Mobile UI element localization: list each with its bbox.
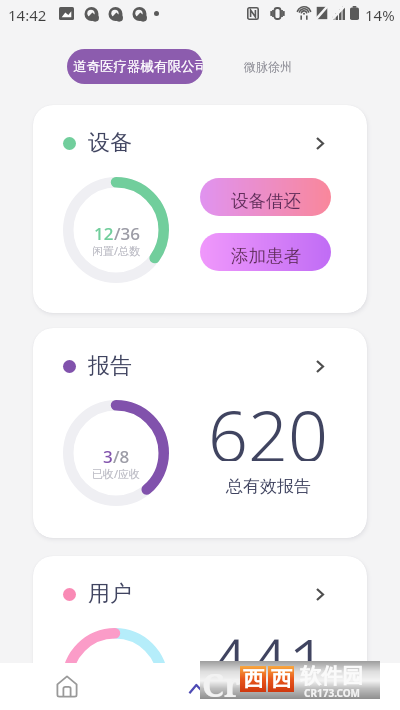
button[interactable]: 报告 <box>33 328 367 404</box>
staticText: 14:42 <box>8 5 47 25</box>
button[interactable]: Statistics <box>133 663 266 710</box>
button[interactable]: 道奇医疗器械有限公司 <box>67 49 203 84</box>
button[interactable]: 设备借还 <box>200 178 331 216</box>
staticText: 已收/应收 <box>92 466 141 481</box>
staticText: 用户 <box>88 580 132 608</box>
staticText: 14% <box>365 5 395 25</box>
staticText: 道奇医疗器械有限公司 <box>73 58 203 75</box>
staticText: 3 <box>103 445 113 468</box>
button[interactable]: 设备 <box>33 105 367 181</box>
staticText: 总有效报告 <box>226 476 311 497</box>
staticText: /8 <box>113 445 130 468</box>
staticText: 软件园 <box>300 663 363 689</box>
staticText: /36 <box>114 222 140 245</box>
staticText: 闲置/总数 <box>92 243 141 258</box>
staticText: CR173.COM <box>304 686 361 700</box>
staticText: 报告 <box>88 352 132 380</box>
button[interactable]: 微脉徐州 <box>238 51 298 82</box>
staticText: 添加患者 <box>231 245 301 267</box>
staticText: 西 <box>271 666 292 692</box>
staticText: 设备借还 <box>231 190 301 212</box>
button[interactable]: Profile <box>266 663 399 710</box>
staticText: 微脉徐州 <box>244 59 292 74</box>
button[interactable]: 添加患者 <box>200 233 331 271</box>
staticText: 12 <box>94 222 114 245</box>
staticText: Cr <box>202 662 242 700</box>
staticText: 441 <box>208 615 328 689</box>
staticText: 620 <box>208 387 328 461</box>
staticText: 设备 <box>88 129 132 157</box>
button[interactable]: Home <box>0 663 133 710</box>
staticText: 西 <box>243 666 264 692</box>
button[interactable]: 用户 <box>33 556 367 632</box>
